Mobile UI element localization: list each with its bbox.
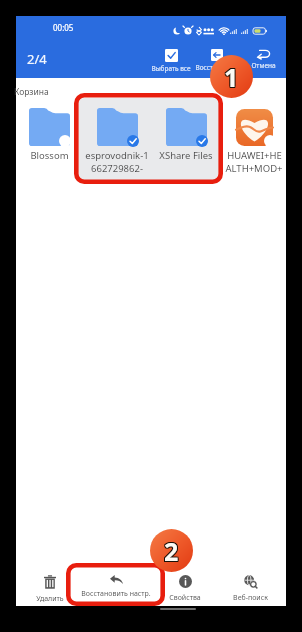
button[interactable]: Restore (194, 42, 240, 78)
staticText: 662729862- (91, 162, 143, 174)
button[interactable]: Properties (155, 570, 215, 604)
staticText: 1 (225, 61, 240, 95)
staticText: 2 (165, 533, 180, 567)
staticText: Выбрать все (151, 64, 191, 73)
staticText: 1 (223, 59, 238, 93)
staticText: Веб-поиск (233, 593, 268, 603)
staticText: 2 (163, 533, 178, 567)
staticText: Свойства (169, 593, 201, 603)
button[interactable]: Restore settings (80, 570, 152, 604)
button[interactable]: Delete (20, 570, 80, 604)
staticText: 1 (224, 59, 239, 93)
staticText: 2 (165, 535, 180, 569)
staticText: esprovodnik-1 (85, 149, 149, 162)
button[interactable]: HUAWEI+HE (220, 106, 288, 174)
staticText: XShare Files (159, 149, 213, 162)
button[interactable]: Select all (148, 42, 194, 78)
button[interactable]: Cancel (240, 42, 286, 78)
staticText: Отмена (251, 61, 276, 70)
button[interactable]: esprovodnik-1 (83, 106, 151, 174)
staticText: 1 (225, 59, 240, 93)
staticText: 2 (164, 535, 179, 569)
staticText: Восстановить настр. (81, 589, 151, 599)
staticText: 2/4 (27, 50, 47, 68)
staticText: Восстановить (195, 63, 239, 72)
button[interactable]: Blossom (15, 106, 83, 174)
staticText: Blossom (30, 149, 69, 162)
staticText: 1 (225, 60, 240, 94)
staticText: 2 (165, 534, 180, 568)
button[interactable]: XShare Files (152, 106, 220, 174)
staticText: Удалить (36, 594, 64, 604)
staticText: 2 (163, 535, 178, 569)
staticText: ALTH+MOD+ (225, 162, 283, 174)
staticText: 1 (224, 60, 239, 94)
staticText: HUAWEI+HE (227, 149, 282, 162)
staticText: 1 (223, 61, 238, 95)
staticText: 2 (164, 534, 179, 568)
button[interactable]: Web search (220, 570, 280, 604)
staticText: 1 (223, 60, 238, 94)
staticText: Корзина (14, 86, 49, 98)
staticText: 2 (163, 534, 178, 568)
staticText: 1 (224, 61, 239, 95)
staticText: 00:05 (53, 22, 74, 33)
staticText: 2 (164, 533, 179, 567)
